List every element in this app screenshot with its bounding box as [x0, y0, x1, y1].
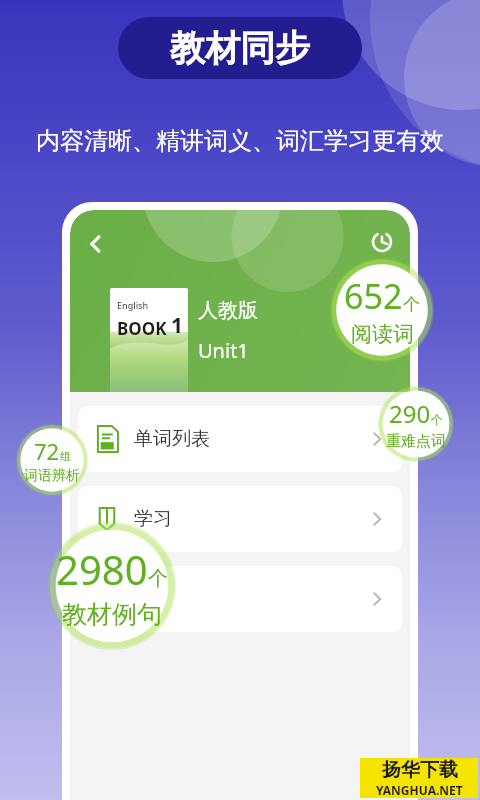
staticText: YANGHUA.NET — [376, 782, 463, 798]
staticText: BOOK — [117, 317, 167, 340]
staticText: 人教版 — [198, 298, 258, 323]
staticText: 个 — [148, 566, 168, 591]
staticText: 重难点词 — [386, 432, 446, 451]
staticText: 扬华下载 — [382, 758, 458, 782]
staticText: 652 — [344, 273, 403, 319]
staticText: 阅读词 — [351, 321, 414, 347]
button[interactable]: Back — [84, 232, 108, 256]
staticText: 个 — [403, 294, 420, 315]
button[interactable]: 学习 — [78, 486, 402, 552]
staticText: 2980 — [56, 542, 148, 596]
staticText: 教材同步 — [170, 26, 310, 70]
button[interactable]: History — [370, 230, 394, 254]
staticText: 组 — [60, 449, 71, 463]
staticText: 个 — [431, 412, 443, 427]
button[interactable]: 单词列表 — [78, 406, 402, 472]
staticText: 单词列表 — [134, 427, 210, 451]
staticText: 词语辨析 — [24, 467, 80, 485]
button[interactable] — [78, 566, 402, 632]
staticText: 72 — [34, 436, 60, 466]
staticText: English — [117, 299, 149, 311]
staticText: 内容清晰、精讲词义、词汇学习更有效 — [36, 126, 444, 156]
staticText: 教材例句 — [62, 599, 162, 630]
staticText: 1 — [171, 311, 184, 340]
button[interactable]: 教材同步 — [118, 17, 362, 79]
staticText: 290 — [389, 397, 431, 430]
staticText: Unit1 — [198, 337, 249, 364]
staticText: 学习 — [134, 507, 172, 531]
